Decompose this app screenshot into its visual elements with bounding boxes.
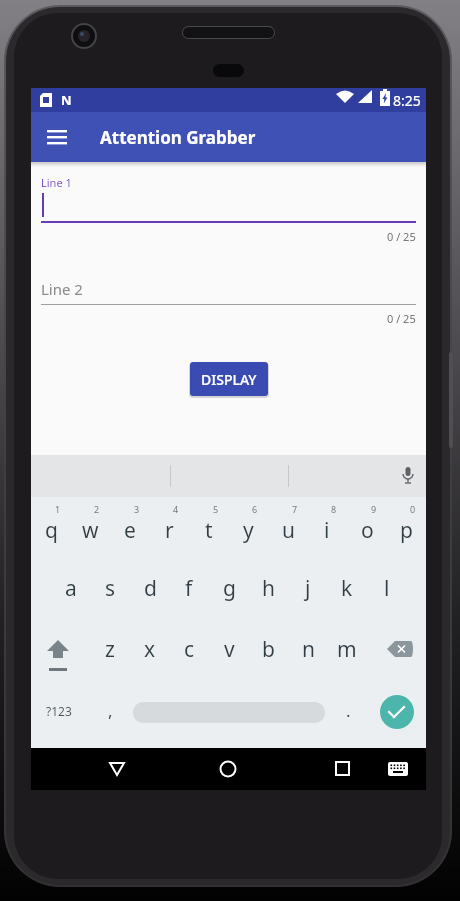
staticText: t bbox=[205, 516, 213, 545]
staticText: q bbox=[45, 516, 58, 545]
button[interactable]: j bbox=[289, 558, 327, 619]
staticText: Attention Grabber bbox=[100, 126, 256, 149]
button[interactable] bbox=[387, 641, 415, 658]
staticText: r bbox=[165, 516, 174, 545]
button[interactable] bbox=[388, 762, 408, 776]
staticText: 0 / 25 bbox=[387, 311, 416, 326]
staticText: i bbox=[324, 516, 330, 545]
button[interactable]: . bbox=[329, 680, 367, 741]
button[interactable] bbox=[380, 695, 414, 729]
staticText: 9 bbox=[371, 503, 377, 515]
button[interactable]: l bbox=[368, 558, 406, 619]
button[interactable]: r bbox=[150, 497, 188, 558]
button[interactable]: i bbox=[308, 497, 346, 558]
staticText: k bbox=[341, 574, 353, 603]
button[interactable]: d bbox=[131, 558, 169, 619]
button[interactable]: x bbox=[131, 619, 169, 680]
staticText: g bbox=[223, 574, 236, 603]
staticText: n bbox=[302, 635, 315, 664]
staticText: 6 bbox=[252, 503, 258, 515]
staticText: 1 bbox=[55, 503, 61, 515]
button[interactable]: g bbox=[210, 558, 248, 619]
button[interactable]: e bbox=[111, 497, 149, 558]
staticText: f bbox=[185, 574, 193, 603]
button[interactable]: b bbox=[249, 619, 287, 680]
button[interactable] bbox=[219, 760, 237, 778]
button[interactable]: c bbox=[170, 619, 208, 680]
staticText: , bbox=[108, 699, 113, 722]
staticText: ?123 bbox=[46, 703, 72, 719]
staticText: 0 bbox=[410, 503, 416, 515]
staticText: Line 1 bbox=[41, 175, 72, 190]
button[interactable]: , bbox=[91, 680, 129, 741]
staticText: j bbox=[305, 574, 311, 603]
staticText: 2 bbox=[94, 503, 100, 515]
button[interactable]: z bbox=[91, 619, 129, 680]
staticText: u bbox=[282, 516, 295, 545]
button[interactable] bbox=[41, 190, 416, 223]
staticText: 5 bbox=[213, 503, 219, 515]
staticText: v bbox=[224, 635, 235, 664]
staticText: m bbox=[337, 635, 357, 664]
staticText: p bbox=[400, 516, 413, 545]
button[interactable]: m bbox=[328, 619, 366, 680]
button[interactable]: k bbox=[328, 558, 366, 619]
button[interactable] bbox=[109, 762, 125, 776]
staticText: s bbox=[105, 574, 116, 603]
staticText: e bbox=[124, 516, 136, 545]
staticText: 3 bbox=[134, 503, 140, 515]
button[interactable]: y bbox=[229, 497, 267, 558]
staticText: d bbox=[144, 574, 157, 603]
button[interactable]: Line 2 bbox=[41, 272, 416, 305]
staticText: 7 bbox=[292, 503, 298, 515]
button[interactable]: u bbox=[269, 497, 307, 558]
button[interactable]: a bbox=[52, 558, 90, 619]
button[interactable]: v bbox=[210, 619, 248, 680]
button[interactable] bbox=[133, 702, 325, 723]
button[interactable] bbox=[402, 467, 414, 485]
staticText: Line 2 bbox=[41, 279, 83, 299]
button[interactable]: h bbox=[249, 558, 287, 619]
button[interactable]: q bbox=[32, 497, 70, 558]
staticText: z bbox=[105, 635, 115, 664]
button[interactable]: f bbox=[170, 558, 208, 619]
button[interactable]: o bbox=[348, 497, 386, 558]
button[interactable] bbox=[47, 128, 67, 146]
staticText: 8:25 bbox=[393, 91, 421, 110]
button[interactable]: n bbox=[289, 619, 327, 680]
button[interactable]: t bbox=[190, 497, 228, 558]
button[interactable] bbox=[335, 761, 350, 776]
staticText: . bbox=[346, 699, 351, 722]
button[interactable]: w bbox=[71, 497, 109, 558]
button[interactable]: p bbox=[387, 497, 425, 558]
staticText: 0 / 25 bbox=[387, 229, 416, 244]
staticText: c bbox=[184, 635, 195, 664]
staticText: DISPLAY bbox=[201, 370, 257, 389]
staticText: b bbox=[262, 635, 275, 664]
button[interactable]: s bbox=[91, 558, 129, 619]
button[interactable]: DISPLAY bbox=[190, 362, 268, 396]
staticText: 4 bbox=[173, 503, 179, 515]
staticText: 8 bbox=[331, 503, 337, 515]
staticText: o bbox=[361, 516, 374, 545]
staticText: N bbox=[61, 91, 72, 109]
button[interactable]: ?123 bbox=[31, 680, 86, 741]
staticText: h bbox=[262, 574, 275, 603]
staticText: x bbox=[144, 635, 156, 664]
staticText: y bbox=[243, 516, 254, 545]
staticText: l bbox=[384, 574, 390, 603]
staticText: w bbox=[82, 516, 99, 545]
staticText: a bbox=[65, 574, 77, 603]
button[interactable] bbox=[44, 640, 72, 674]
